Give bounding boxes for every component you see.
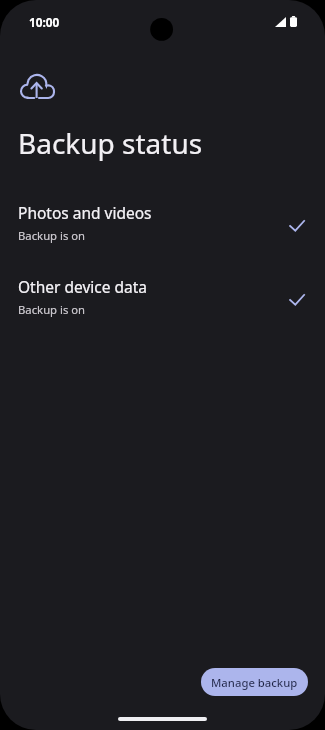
staticText: Photos and videos (18, 202, 152, 223)
other: Backup is on (289, 287, 307, 305)
other: Backup is on (289, 213, 307, 231)
staticText: Backup is on (18, 302, 86, 317)
staticText: Manage backup (211, 675, 298, 690)
other: Cloud backup (20, 73, 55, 99)
button[interactable]: Other device data (0, 259, 325, 333)
staticText: 10:00 (29, 14, 60, 30)
staticText: Backup status (18, 124, 203, 162)
staticText: Other device data (18, 276, 148, 297)
button[interactable]: Photos and videos (0, 185, 325, 259)
button[interactable]: Manage backup (201, 668, 308, 696)
staticText: Backup is on (18, 228, 86, 243)
